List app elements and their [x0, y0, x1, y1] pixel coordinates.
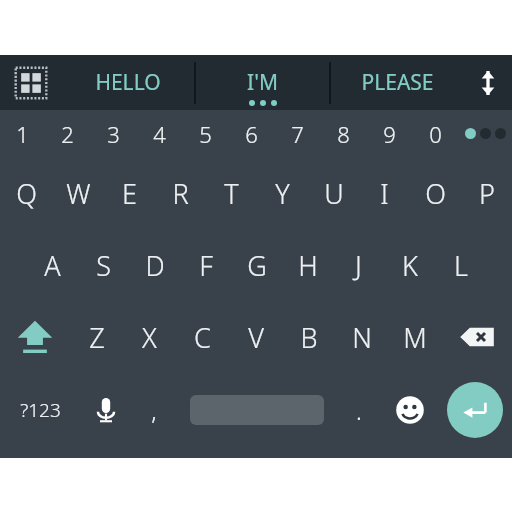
button[interactable]: 2 [45, 110, 90, 157]
button[interactable]: I'M [196, 55, 329, 110]
staticText: 0 [429, 119, 442, 149]
staticText: E [122, 175, 137, 212]
button[interactable]: , [131, 373, 177, 447]
staticText: HELLO [95, 68, 161, 97]
staticText: 9 [383, 119, 396, 149]
button[interactable]: O [410, 157, 461, 229]
button[interactable]: E [104, 157, 155, 229]
staticText: H [298, 247, 318, 284]
staticText: 1 [16, 119, 29, 149]
button[interactable]: Y [257, 157, 308, 229]
staticText: F [199, 247, 213, 284]
staticText: 4 [153, 119, 166, 149]
staticText: B [300, 319, 318, 356]
button[interactable]: V [229, 301, 282, 373]
button[interactable]: A [27, 229, 78, 301]
button[interactable]: 4 [136, 110, 182, 157]
button[interactable]: Enter [438, 373, 512, 447]
button[interactable]: G [231, 229, 282, 301]
staticText: C [194, 319, 211, 356]
staticText: T [224, 175, 239, 212]
staticText: D [145, 247, 165, 284]
button[interactable]: 3 [90, 110, 136, 157]
button[interactable]: 6 [228, 110, 274, 157]
button[interactable]: 7 [274, 110, 320, 157]
button[interactable]: Backspace [441, 301, 512, 373]
button[interactable]: T [206, 157, 257, 229]
button[interactable]: J [333, 229, 384, 301]
staticText: V [248, 319, 264, 356]
staticText: L [454, 247, 468, 284]
staticText: R [172, 175, 189, 212]
button[interactable]: W [52, 157, 104, 229]
staticText: X [142, 319, 157, 356]
button[interactable]: ?123 [0, 373, 80, 447]
staticText: I'M [247, 68, 278, 97]
button[interactable]: . [336, 373, 382, 447]
staticText: , [151, 394, 157, 427]
button[interactable]: 1 [0, 110, 45, 157]
staticText: N [352, 319, 372, 356]
button[interactable]: PLEASE [331, 55, 464, 110]
staticText: 3 [107, 119, 120, 149]
button[interactable]: H [282, 229, 333, 301]
button[interactable]: Shift [0, 301, 70, 373]
staticText: U [324, 175, 344, 212]
staticText: G [247, 247, 267, 284]
staticText: Y [275, 175, 290, 212]
button[interactable] [177, 373, 336, 447]
button[interactable]: 0 [412, 110, 458, 157]
staticText: 5 [199, 119, 212, 149]
button[interactable]: R [155, 157, 206, 229]
button[interactable]: U [308, 157, 359, 229]
staticText: 2 [61, 119, 74, 149]
staticText: M [403, 319, 427, 356]
staticText: Z [89, 319, 105, 356]
button[interactable]: X [123, 301, 176, 373]
staticText: 6 [245, 119, 258, 149]
button[interactable]: C [176, 301, 229, 373]
staticText: I [380, 175, 389, 212]
button[interactable]: B [282, 301, 335, 373]
staticText: ?123 [20, 397, 61, 423]
button[interactable]: Keyboard layout chooser [0, 55, 62, 110]
button[interactable]: 5 [182, 110, 228, 157]
staticText: . [356, 394, 362, 427]
staticText: 8 [337, 119, 350, 149]
button[interactable]: Q [0, 157, 52, 229]
button[interactable]: M [388, 301, 441, 373]
button[interactable]: P [461, 157, 512, 229]
button[interactable]: Z [70, 301, 123, 373]
button[interactable]: 9 [366, 110, 412, 157]
button[interactable]: Expand suggestions [464, 55, 512, 110]
staticText: S [96, 247, 111, 284]
button[interactable]: S [78, 229, 129, 301]
button[interactable]: F [180, 229, 231, 301]
staticText: PLEASE [361, 68, 434, 97]
staticText: J [355, 247, 362, 284]
button[interactable]: K [384, 229, 435, 301]
staticText: Q [16, 175, 37, 212]
button[interactable]: N [335, 301, 388, 373]
button[interactable]: I [359, 157, 410, 229]
button[interactable]: Emoji [382, 373, 438, 447]
staticText: 7 [291, 119, 304, 149]
staticText: W [66, 175, 91, 212]
staticText: P [479, 175, 495, 212]
button[interactable]: 8 [320, 110, 366, 157]
staticText: K [402, 247, 418, 284]
button[interactable]: L [435, 229, 486, 301]
staticText: A [44, 247, 61, 284]
button[interactable]: Voice input [80, 373, 131, 447]
button[interactable]: D [129, 229, 180, 301]
staticText: O [425, 175, 446, 212]
button[interactable]: HELLO [62, 55, 194, 110]
